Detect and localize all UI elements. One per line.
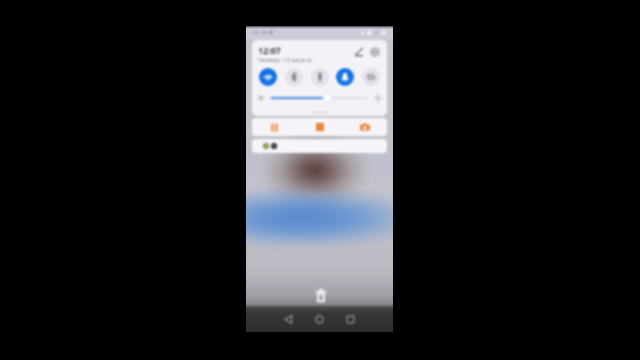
button[interactable]: Auto rotate [362,68,380,86]
button[interactable]: Flashlight [311,68,329,86]
button[interactable]: Sound [336,68,354,86]
button[interactable]: Back [273,306,304,332]
button[interactable]: Settings [367,44,383,60]
staticText: Четверг, 13 августа [258,56,312,64]
button[interactable]: Bluetooth [285,68,303,86]
button[interactable]: Home [304,306,335,332]
button[interactable]: Wi-Fi [259,68,277,86]
button[interactable]: Stop [297,118,342,136]
button[interactable]: Recents [335,306,366,332]
button[interactable]: Brightness [271,92,368,104]
button[interactable]: Camera [342,118,387,136]
button[interactable]: Pause [252,118,297,136]
button[interactable] [252,139,387,153]
staticText: 12:07 [258,44,281,56]
button[interactable]: Edit quick settings [351,44,367,60]
